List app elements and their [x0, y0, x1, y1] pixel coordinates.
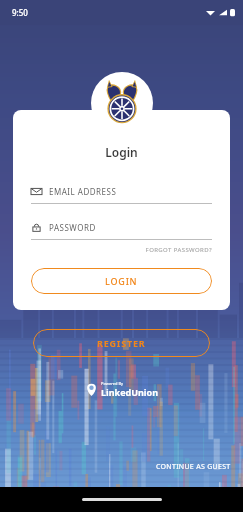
button[interactable]: CONTINUE AS GUEST	[156, 462, 231, 472]
staticText: LinkedUnion	[101, 386, 159, 398]
button[interactable]: FORGOT PASSWORD?	[31, 246, 212, 254]
staticText: LOGIN	[105, 275, 138, 287]
staticText: REGISTER	[97, 337, 146, 349]
staticText: Powered By	[101, 381, 124, 386]
button[interactable]: REGISTER	[33, 329, 210, 357]
staticText: 9:50	[12, 7, 28, 18]
staticText: PASSWORD	[49, 222, 96, 233]
staticText: Login	[31, 144, 212, 160]
button[interactable]: LOGIN	[31, 268, 212, 294]
staticText: EMAIL ADDRESS	[49, 186, 117, 197]
